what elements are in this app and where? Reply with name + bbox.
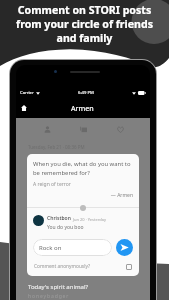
button[interactable]: Stories xyxy=(77,123,89,135)
staticText: Today's spirit animal? xyxy=(28,283,89,291)
button[interactable]: Collapse xyxy=(80,205,86,211)
button[interactable]: Likes xyxy=(114,123,126,135)
staticText: honeybadger xyxy=(28,293,70,300)
staticText: Armen xyxy=(71,103,94,113)
staticText: Comment on STORI posts from your circle … xyxy=(4,3,165,45)
staticText: Comment anonymously? xyxy=(34,263,91,270)
staticText: When you die, what do you want to be rem… xyxy=(33,160,131,176)
staticText: Jun 20 · Yesterday xyxy=(73,217,107,222)
staticText: Carrier xyxy=(20,90,34,96)
staticText: 6:49 PM xyxy=(78,90,94,96)
button[interactable]: Profile xyxy=(41,123,53,135)
button[interactable]: Home xyxy=(19,103,29,113)
staticText: Christbon xyxy=(47,215,71,222)
staticText: You do you boo xyxy=(47,224,84,231)
staticText: Tuesday, Feb 21 · 08:36 PM xyxy=(28,144,150,150)
button[interactable]: Rock on xyxy=(33,239,112,256)
button[interactable]: Send xyxy=(116,239,133,256)
staticText: A reign of terror xyxy=(33,181,71,188)
staticText: Rock on xyxy=(39,244,62,252)
button[interactable]: Comment anonymously xyxy=(126,264,132,270)
staticText: — Armen xyxy=(33,192,133,199)
